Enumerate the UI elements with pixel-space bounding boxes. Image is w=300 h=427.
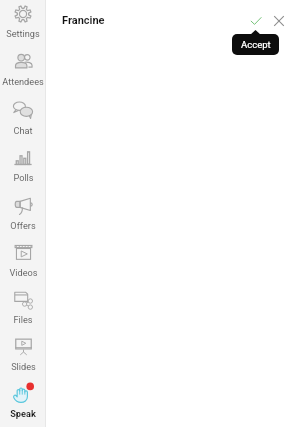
staticText: Offers	[10, 220, 36, 231]
staticText: Speak	[10, 408, 36, 419]
button[interactable]: Accept	[246, 11, 266, 31]
button[interactable]: Decline	[269, 11, 289, 31]
staticText: Slides	[11, 361, 36, 372]
button[interactable]: Videos	[0, 239, 46, 286]
button[interactable]: Offers	[0, 192, 46, 239]
staticText: Polls	[13, 172, 34, 183]
button[interactable]: Files	[0, 286, 46, 333]
staticText: Francine	[62, 14, 105, 27]
button[interactable]: Attendees	[0, 48, 46, 96]
staticText: Videos	[9, 267, 38, 278]
button[interactable]: Settings	[0, 0, 46, 48]
staticText: Settings	[6, 28, 40, 39]
staticText: Files	[13, 314, 33, 325]
button[interactable]: Polls	[0, 144, 46, 192]
staticText: Chat	[13, 125, 33, 136]
staticText: Accept	[241, 39, 271, 50]
staticText: Attendees	[2, 76, 44, 87]
button[interactable]: Speak	[0, 380, 46, 427]
button[interactable]: Chat	[0, 96, 46, 144]
button[interactable]: Slides	[0, 333, 46, 380]
